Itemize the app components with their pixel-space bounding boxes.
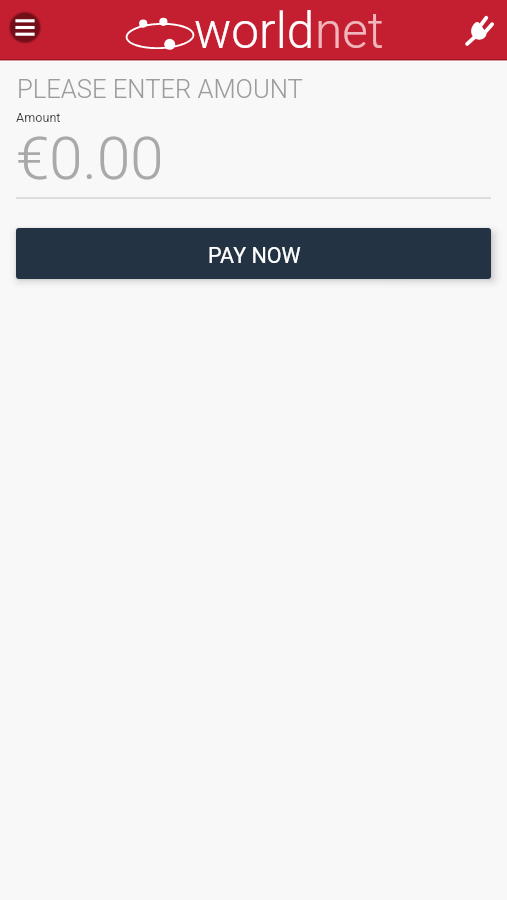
staticText: €0.00 bbox=[16, 123, 164, 193]
button[interactable]: Open navigation menu bbox=[7, 9, 43, 45]
staticText: world bbox=[194, 2, 315, 60]
button[interactable]: Connect terminal bbox=[464, 14, 494, 46]
button[interactable]: PAY NOW bbox=[16, 228, 491, 279]
staticText: Amount bbox=[16, 110, 61, 125]
staticText: PAY NOW bbox=[208, 243, 301, 268]
staticText: net bbox=[315, 2, 384, 60]
staticText: PLEASE ENTER AMOUNT bbox=[17, 74, 303, 104]
button[interactable]: Amount bbox=[0, 104, 507, 199]
